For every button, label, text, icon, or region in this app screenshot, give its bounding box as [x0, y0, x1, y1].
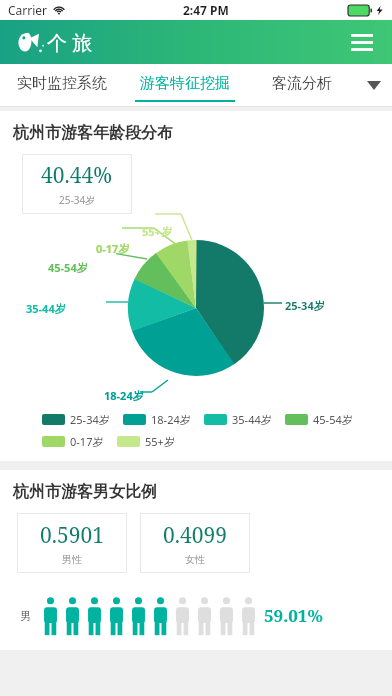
- staticText: 25-34岁: [70, 412, 110, 427]
- button[interactable]: 35-44岁: [204, 412, 272, 427]
- staticText: 游客特征挖掘: [140, 74, 230, 93]
- staticText: 实时监控系统: [17, 74, 107, 93]
- staticText: 0-17岁: [70, 434, 104, 449]
- staticText: 2:47 PM: [183, 2, 229, 18]
- staticText: 男性: [62, 553, 82, 566]
- button[interactable]: 客流分析: [247, 64, 356, 106]
- button[interactable]: 40.44%: [22, 154, 132, 214]
- staticText: 35-44岁: [26, 301, 66, 316]
- staticText: 35-44岁: [232, 412, 272, 427]
- staticText: 杭州市游客年龄段分布: [13, 123, 173, 143]
- staticText: 0.5901: [40, 521, 104, 550]
- staticText: 男: [20, 609, 31, 623]
- staticText: 40.44%: [41, 161, 113, 190]
- button[interactable]: 45-54岁: [285, 412, 353, 427]
- button[interactable]: 25-34岁: [42, 412, 110, 427]
- staticText: 25-34岁: [285, 298, 325, 313]
- staticText: 杭州市游客男女比例: [13, 482, 157, 502]
- staticText: 客流分析: [272, 74, 332, 93]
- staticText: 45-54岁: [48, 260, 88, 275]
- button[interactable]: More tabs: [356, 64, 392, 106]
- staticText: 59.01%: [264, 604, 323, 627]
- button[interactable]: 0.5901: [17, 513, 127, 573]
- button[interactable]: 实时监控系统: [0, 64, 123, 106]
- staticText: 55+岁: [145, 434, 175, 449]
- button[interactable]: 55+岁: [117, 434, 175, 449]
- button[interactable]: 0-17岁: [42, 434, 104, 449]
- staticText: 个 旅: [47, 29, 93, 56]
- staticText: Carrier: [8, 2, 48, 18]
- staticText: 45-54岁: [313, 412, 353, 427]
- staticText: 18-24岁: [151, 412, 191, 427]
- staticText: 0-17岁: [96, 241, 130, 256]
- staticText: 女性: [185, 553, 205, 566]
- button[interactable]: 游客特征挖掘: [123, 64, 247, 106]
- staticText: 18-24岁: [104, 388, 144, 403]
- button[interactable]: Menu: [346, 26, 378, 58]
- staticText: 55+岁: [142, 224, 172, 239]
- staticText: 0.4099: [163, 521, 227, 550]
- staticText: 25-34岁: [59, 193, 96, 207]
- button[interactable]: 0.4099: [140, 513, 250, 573]
- button[interactable]: 18-24岁: [123, 412, 191, 427]
